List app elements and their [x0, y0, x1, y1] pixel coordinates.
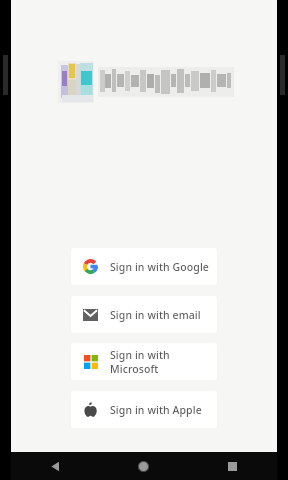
staticText: Sign in with Apple — [110, 403, 202, 417]
other: Google logo — [83, 259, 98, 274]
button[interactable]: Back — [11, 452, 99, 480]
other: Email — [83, 309, 98, 321]
other: Apple logo — [84, 402, 97, 417]
other: Microsoft logo — [84, 355, 98, 369]
button[interactable]: Home — [99, 452, 188, 480]
button[interactable]: Microsoft logo — [71, 343, 217, 380]
staticText: Sign in with Google — [110, 260, 209, 274]
button[interactable]: Recent apps — [188, 452, 277, 480]
staticText: Sign in with email — [110, 308, 201, 322]
staticText: Sign in with Microsoft — [110, 348, 217, 376]
button[interactable]: Google logo — [71, 248, 217, 285]
button[interactable]: Apple logo — [71, 391, 217, 428]
button[interactable]: Email — [71, 296, 217, 333]
